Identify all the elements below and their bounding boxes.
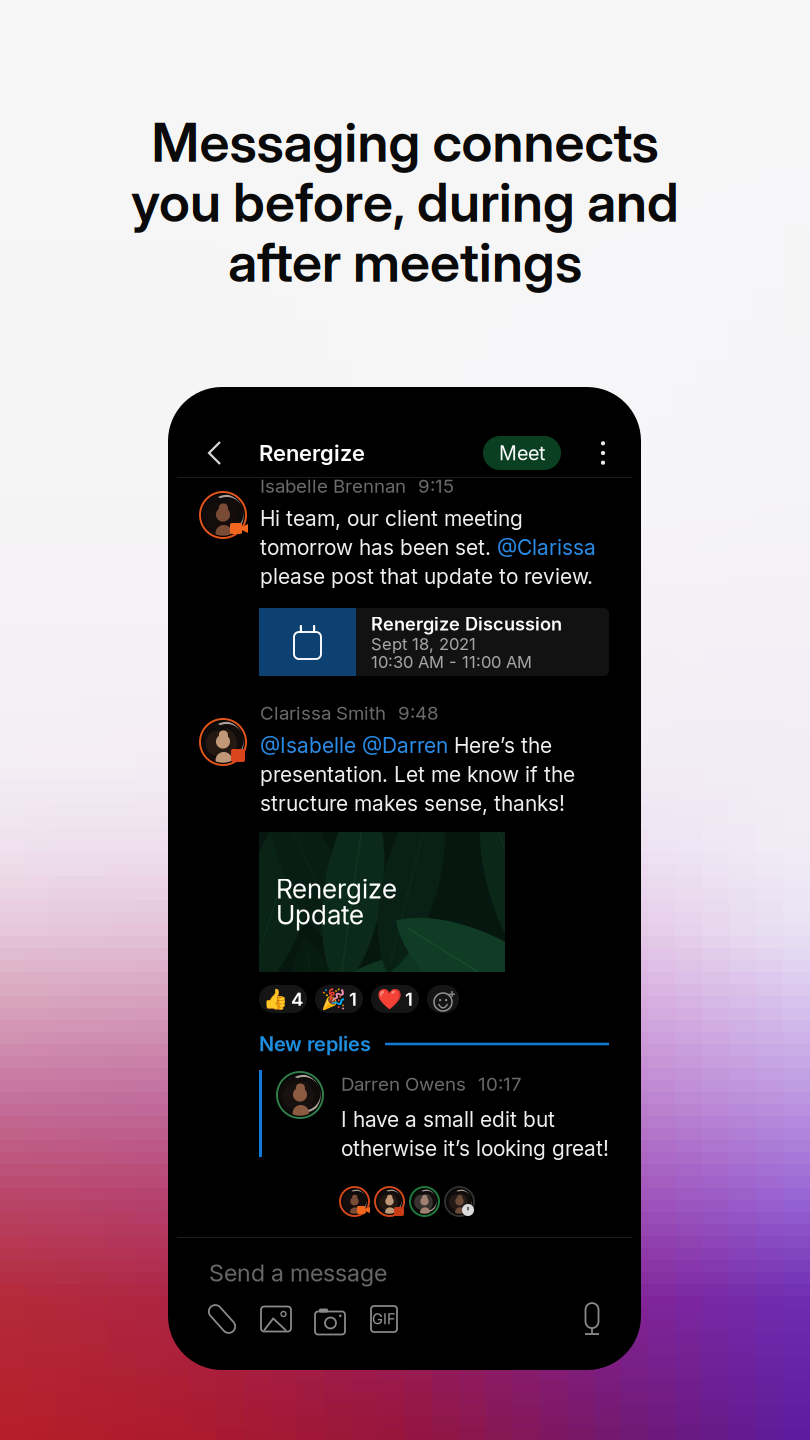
staticText: Renergize — [259, 440, 365, 466]
staticText: Messaging connects — [151, 109, 658, 175]
staticText: 👍 — [263, 987, 288, 1011]
staticText: tomorrow has been set. — [260, 535, 497, 560]
staticText: presentation. Let me know if the — [260, 762, 575, 787]
staticText: @Clarissa — [497, 535, 596, 560]
button[interactable]: Add reaction — [427, 985, 459, 1013]
button[interactable]: More options — [583, 432, 623, 474]
staticText: otherwise it’s looking great! — [341, 1136, 609, 1161]
staticText: Here’s the — [454, 733, 552, 758]
staticText: Sept 18, 2021 — [371, 634, 476, 654]
button[interactable]: Renergize Update attachment — [259, 832, 505, 972]
staticText: Renergize — [276, 873, 397, 905]
staticText: 9:15 — [418, 475, 454, 497]
button[interactable]: Attach file — [195, 1299, 249, 1339]
button[interactable]: Voice message — [570, 1299, 614, 1339]
staticText: 10:17 — [478, 1073, 522, 1095]
staticText: New replies — [259, 1032, 371, 1056]
staticText: GIF — [372, 1310, 396, 1328]
button[interactable]: 👍 — [259, 985, 307, 1013]
button[interactable]: Camera — [303, 1299, 357, 1339]
button[interactable]: ❤️ — [371, 985, 419, 1013]
staticText: I have a small edit but — [341, 1107, 555, 1132]
staticText: 4 — [291, 988, 303, 1010]
staticText: Send a message — [209, 1259, 387, 1287]
staticText: Update — [276, 899, 364, 931]
staticText: after meetings — [228, 229, 582, 295]
staticText: Renergize Discussion — [371, 613, 562, 635]
staticText: structure makes sense, thanks! — [260, 791, 565, 816]
staticText: Isabelle Brennan — [260, 475, 406, 497]
staticText: you before, during and — [131, 169, 679, 235]
staticText: 1 — [405, 988, 413, 1010]
staticText: Meet — [499, 441, 545, 465]
button[interactable]: 🎉 — [315, 985, 363, 1013]
staticText: 9:48 — [398, 702, 439, 724]
staticText: Clarissa Smith — [260, 702, 386, 724]
staticText: please post that update to review. — [260, 564, 593, 589]
staticText: 10:30 AM - 11:00 AM — [371, 652, 532, 672]
button[interactable]: Photo — [249, 1299, 303, 1339]
staticText: 1 — [349, 988, 357, 1010]
button[interactable]: Renergize Discussion — [259, 608, 609, 676]
button[interactable]: Meet — [483, 436, 561, 470]
button[interactable]: Back — [193, 432, 235, 474]
staticText: Hi team, our client meeting — [260, 506, 523, 531]
staticText: Darren Owens — [341, 1073, 466, 1095]
staticText: ❤️ — [377, 987, 402, 1011]
staticText: 🎉 — [321, 987, 346, 1011]
button[interactable]: Send a message — [177, 1249, 632, 1297]
button[interactable]: GIF — [357, 1299, 411, 1339]
staticText: @Isabelle @Darren — [260, 733, 454, 758]
